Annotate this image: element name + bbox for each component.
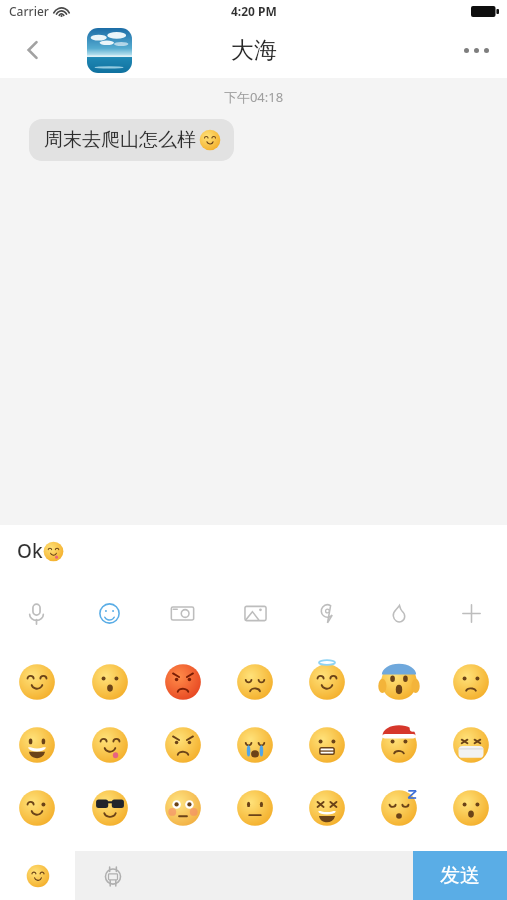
staticText: 下午04:18 (0, 88, 507, 106)
button[interactable]: Emoji (146, 650, 219, 713)
button[interactable]: Photos (219, 577, 291, 650)
button[interactable]: Emoji (435, 776, 507, 839)
staticText: 4:20 PM (231, 3, 277, 19)
button[interactable]: Hot (363, 577, 435, 650)
staticText: 大海 (231, 36, 277, 65)
button[interactable]: Camera (146, 577, 219, 650)
button[interactable]: Emoji (73, 776, 146, 839)
button[interactable]: Emoji (219, 776, 291, 839)
button[interactable]: Emoji (0, 650, 73, 713)
staticText: 周末去爬山怎么样 (44, 128, 196, 152)
button[interactable]: Emoji (146, 713, 219, 776)
button[interactable]: Emoji (146, 776, 219, 839)
staticText: 发送 (440, 863, 480, 888)
button[interactable]: Emoji (73, 577, 146, 650)
button[interactable]: Emoji (0, 713, 73, 776)
button[interactable]: Voice message (0, 577, 73, 650)
button[interactable]: Profile avatar (87, 28, 132, 73)
button[interactable]: Emoji (291, 713, 363, 776)
button[interactable]: Delete (75, 851, 413, 900)
button[interactable]: Emoji (219, 713, 291, 776)
button[interactable]: Back (0, 22, 66, 78)
button[interactable]: Emoji (435, 650, 507, 713)
staticText: Ok (17, 538, 43, 564)
button[interactable]: Emoji (219, 650, 291, 713)
button[interactable]: Emoji (363, 650, 435, 713)
button[interactable]: Emoji (291, 776, 363, 839)
button[interactable]: Emoji keyboard (0, 851, 75, 900)
button[interactable]: Emoji (291, 650, 363, 713)
button[interactable]: 发送 (413, 851, 507, 900)
button[interactable]: Emoji (0, 776, 73, 839)
button[interactable]: Emoji (363, 713, 435, 776)
button[interactable]: Emoji (73, 650, 146, 713)
button[interactable]: Emoji (73, 713, 146, 776)
staticText: Carrier (9, 3, 49, 19)
button[interactable]: More options (445, 22, 507, 78)
button[interactable]: Location (291, 577, 363, 650)
button[interactable]: Emoji (435, 713, 507, 776)
button[interactable]: 周末去爬山怎么样 (29, 119, 234, 161)
button[interactable]: Emoji (363, 776, 435, 839)
button[interactable]: More (435, 577, 507, 650)
